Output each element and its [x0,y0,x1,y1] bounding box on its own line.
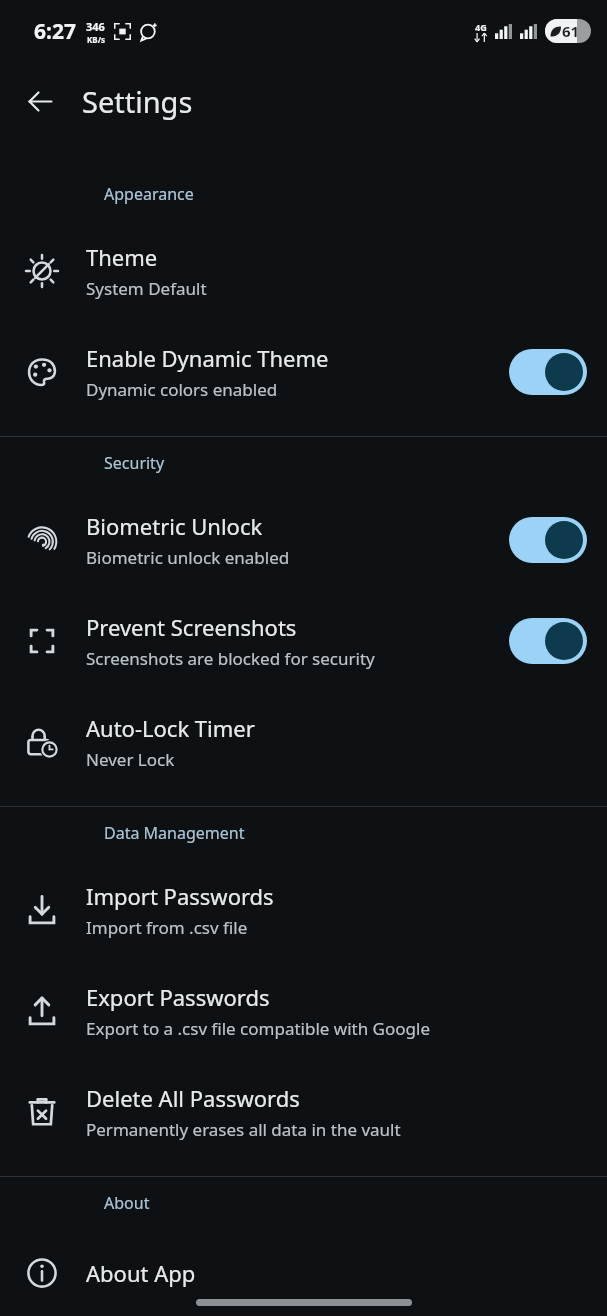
staticText: About App [86,1258,196,1288]
staticText: Settings [82,82,193,121]
staticText: 61 [562,21,580,41]
button[interactable]: Auto-Lock Timer [0,691,607,792]
staticText: 6:27 [34,17,76,46]
button[interactable]: Toggle [509,517,587,563]
button[interactable]: Theme [0,220,607,321]
staticText: Import from .csv file [86,916,248,939]
button[interactable]: Enable Dynamic Theme [0,321,607,422]
staticText: Screenshots are blocked for security [86,647,375,670]
staticText: Export Passwords [86,982,270,1012]
staticText: KB/s [87,34,105,45]
staticText: Data Management [104,822,245,844]
staticText: 4G [475,21,487,33]
button[interactable]: Export Passwords [0,960,607,1061]
staticText: Prevent Screenshots [86,612,297,642]
staticText: System Default [86,277,207,300]
button[interactable]: Delete All Passwords [0,1061,607,1162]
button[interactable]: Import Passwords [0,859,607,960]
staticText: Never Lock [86,748,175,771]
staticText: Appearance [104,183,194,205]
staticText: Import Passwords [86,881,274,911]
staticText: Permanently erases all data in the vault [86,1118,401,1141]
staticText: 346 [86,19,105,34]
staticText: Enable Dynamic Theme [86,343,329,373]
button[interactable]: Prevent Screenshots [0,590,607,691]
staticText: Delete All Passwords [86,1083,300,1113]
button[interactable]: Toggle [509,349,587,395]
button[interactable]: Toggle [509,618,587,664]
staticText: About [104,1192,150,1214]
staticText: Biometric unlock enabled [86,546,290,569]
button[interactable]: Biometric Unlock [0,489,607,590]
staticText: Security [104,452,165,474]
staticText: Auto-Lock Timer [86,713,255,743]
staticText: Dynamic colors enabled [86,378,278,401]
button[interactable]: Back [14,75,66,127]
staticText: Theme [86,242,158,272]
staticText: Export to a .csv file compatible with Go… [86,1017,430,1040]
staticText: Biometric Unlock [86,511,263,541]
button[interactable]: About App [0,1229,607,1316]
